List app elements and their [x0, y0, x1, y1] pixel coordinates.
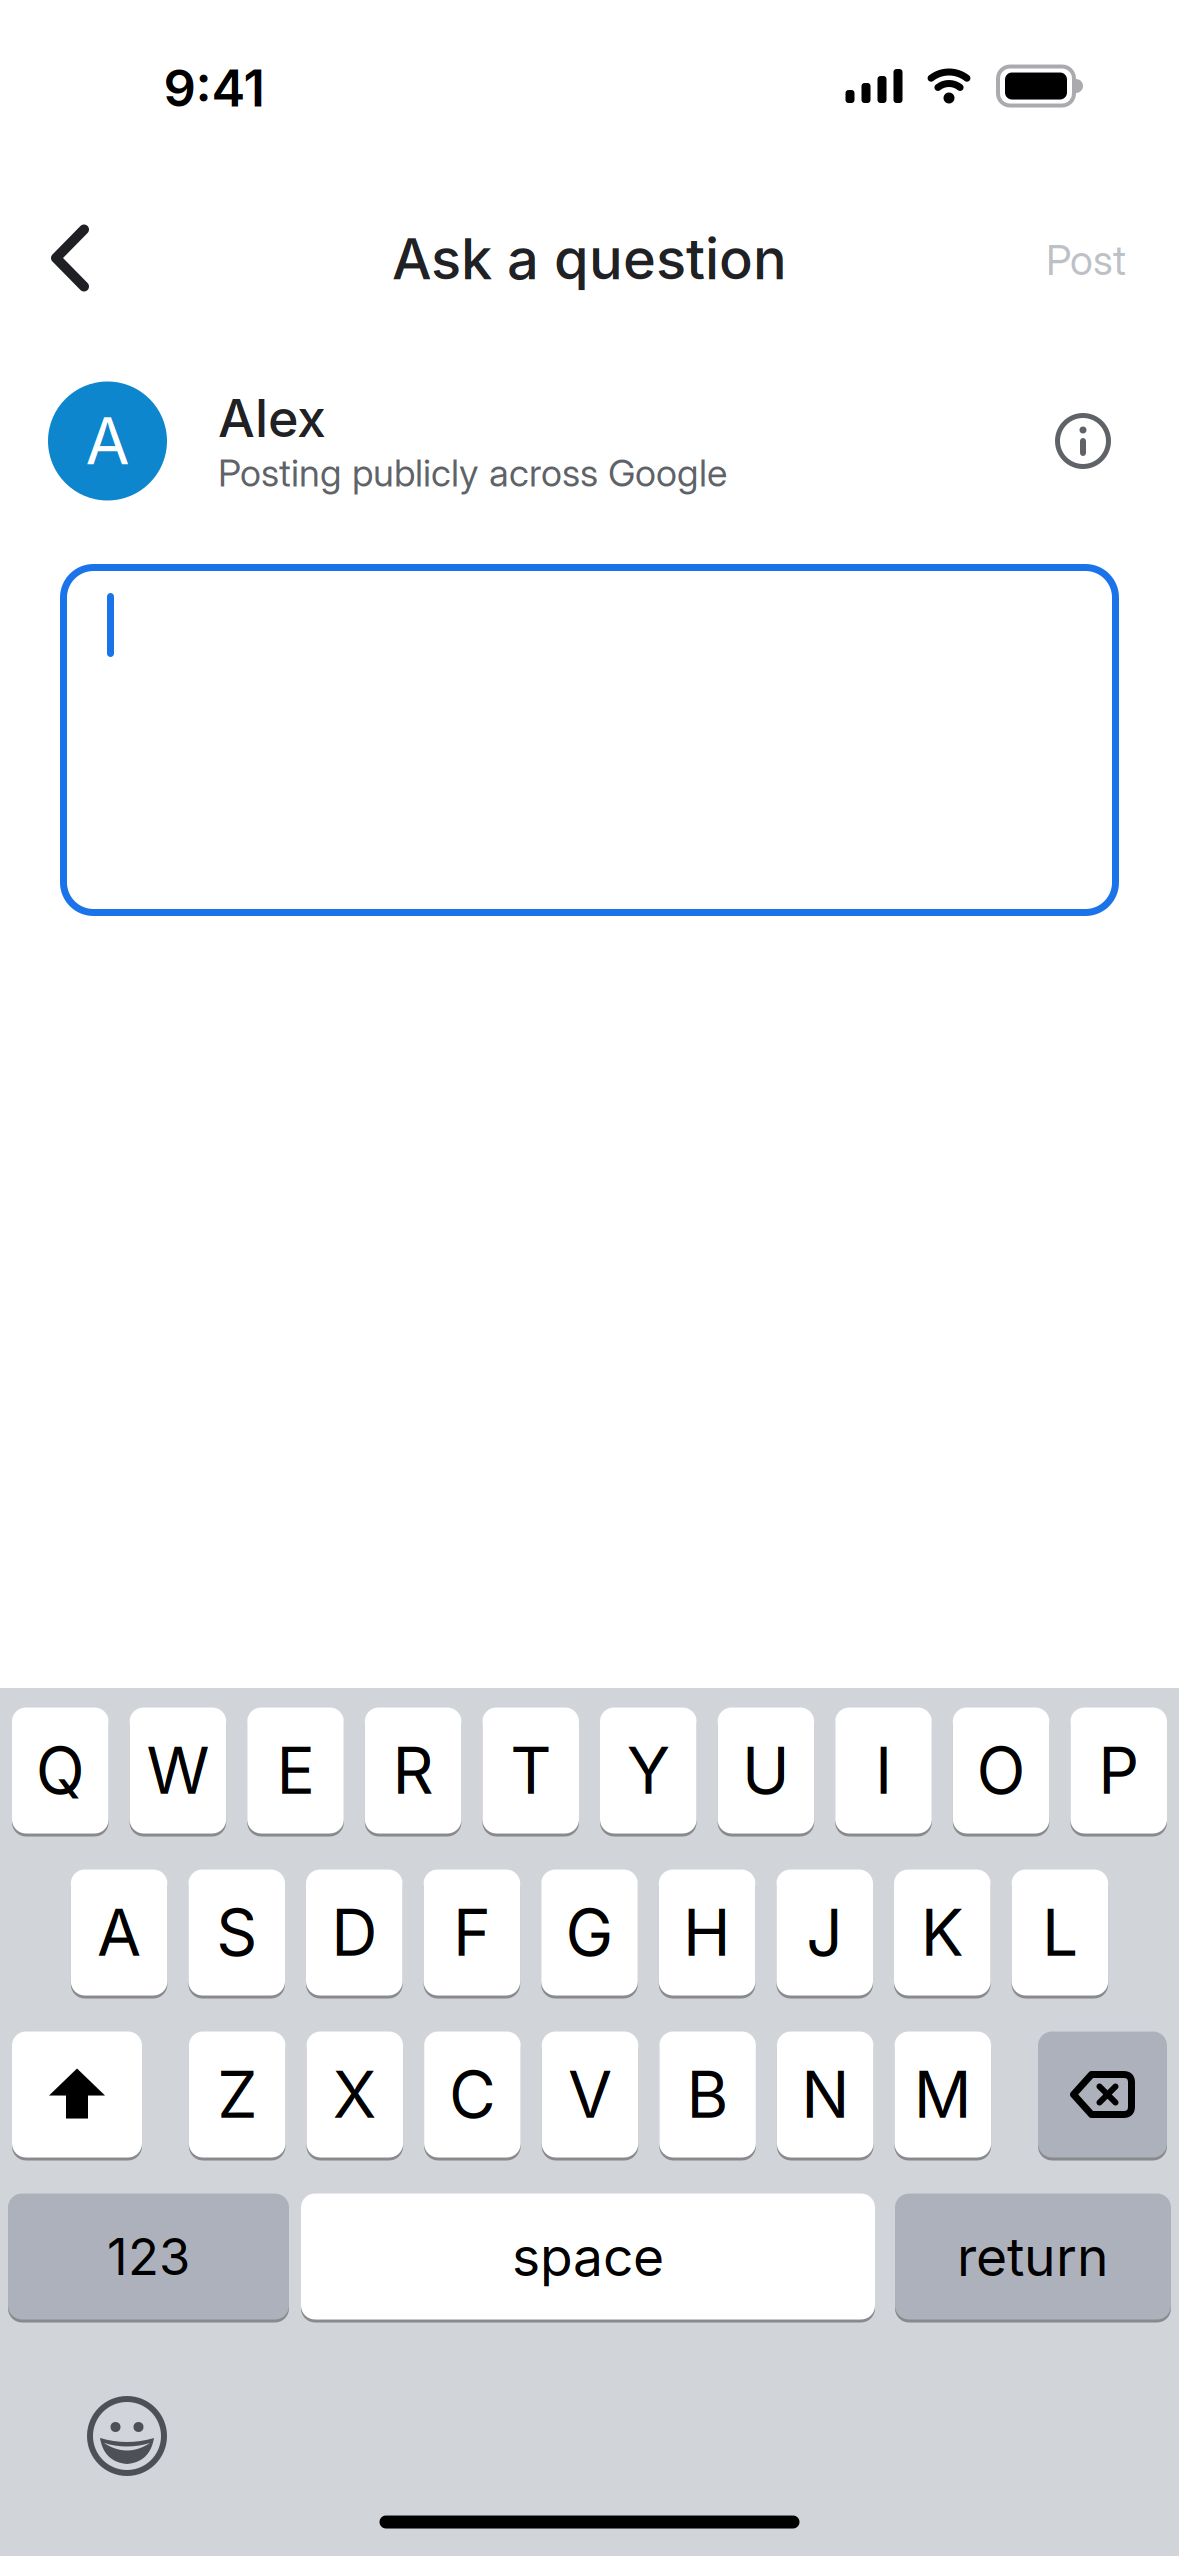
button[interactable]: return [895, 2193, 1171, 2319]
button[interactable]: F [424, 1869, 520, 1995]
staticText: 123 [107, 2226, 190, 2287]
button[interactable]: Y [600, 1707, 697, 1833]
button[interactable]: I [835, 1707, 932, 1833]
button[interactable]: space [301, 2193, 875, 2319]
staticText: K [921, 1894, 964, 1971]
staticText: U [742, 1732, 790, 1809]
staticText: N [801, 2056, 849, 2133]
staticText: C [449, 2056, 496, 2133]
staticText: P [1098, 1732, 1139, 1809]
staticText: R [393, 1732, 434, 1809]
button[interactable]: P [1070, 1707, 1167, 1833]
button[interactable]: W [130, 1707, 226, 1833]
staticText: T [510, 1732, 551, 1809]
staticText: S [216, 1894, 257, 1971]
staticText: Q [36, 1732, 85, 1809]
staticText: B [687, 2056, 729, 2133]
button[interactable]: E [247, 1707, 344, 1833]
staticText: G [565, 1894, 613, 1971]
button[interactable]: V [542, 2031, 638, 2157]
button[interactable]: D [306, 1869, 403, 1995]
button[interactable]: U [718, 1707, 814, 1833]
button[interactable]: H [659, 1869, 755, 1995]
button[interactable]: O [953, 1707, 1049, 1833]
button[interactable]: B [659, 2031, 756, 2157]
button[interactable]: A [71, 1869, 167, 1995]
button[interactable]: Shift [12, 2031, 142, 2157]
staticText: A [97, 1894, 141, 1971]
button[interactable]: T [482, 1707, 579, 1833]
staticText: X [333, 2056, 377, 2133]
button[interactable]: R [365, 1707, 461, 1833]
staticText: Alex [218, 386, 326, 449]
button[interactable]: Numbers [8, 2193, 289, 2319]
button[interactable]: K [894, 1869, 991, 1995]
button[interactable]: Z [189, 2031, 285, 2157]
staticText: Ask a question [392, 225, 787, 293]
staticText: Y [627, 1732, 670, 1809]
staticText: 9:41 [163, 57, 264, 119]
staticText: return [957, 2224, 1109, 2289]
staticText: Post [1046, 235, 1126, 285]
button[interactable]: X [306, 2031, 403, 2157]
staticText: H [683, 1894, 731, 1971]
button[interactable]: J [776, 1869, 873, 1995]
staticText: D [331, 1894, 377, 1971]
button[interactable]: C [424, 2031, 521, 2157]
staticText: F [453, 1894, 491, 1971]
button[interactable]: Back [30, 218, 110, 298]
button[interactable]: Q [12, 1707, 109, 1833]
staticText: E [276, 1732, 314, 1809]
staticText: V [568, 2056, 612, 2133]
staticText: Z [217, 2056, 257, 2133]
button[interactable]: L [1012, 1869, 1108, 1995]
staticText: A [85, 402, 129, 480]
button[interactable]: M [894, 2031, 991, 2157]
button[interactable]: N [777, 2031, 873, 2157]
staticText: W [146, 1732, 209, 1809]
staticText: O [977, 1732, 1026, 1809]
button[interactable]: About posting publicly [1056, 414, 1110, 468]
staticText: space [512, 2224, 664, 2289]
button[interactable]: S [188, 1869, 285, 1995]
button[interactable]: Emoji [87, 2396, 167, 2476]
staticText: M [914, 2056, 972, 2133]
button[interactable]: Post [996, 210, 1176, 310]
staticText: J [806, 1894, 843, 1971]
button[interactable]: Delete [1038, 2031, 1167, 2157]
staticText: L [1042, 1894, 1078, 1971]
staticText: I [875, 1732, 892, 1809]
button[interactable]: G [541, 1869, 638, 1995]
staticText: Posting publicly across Google [218, 450, 727, 496]
